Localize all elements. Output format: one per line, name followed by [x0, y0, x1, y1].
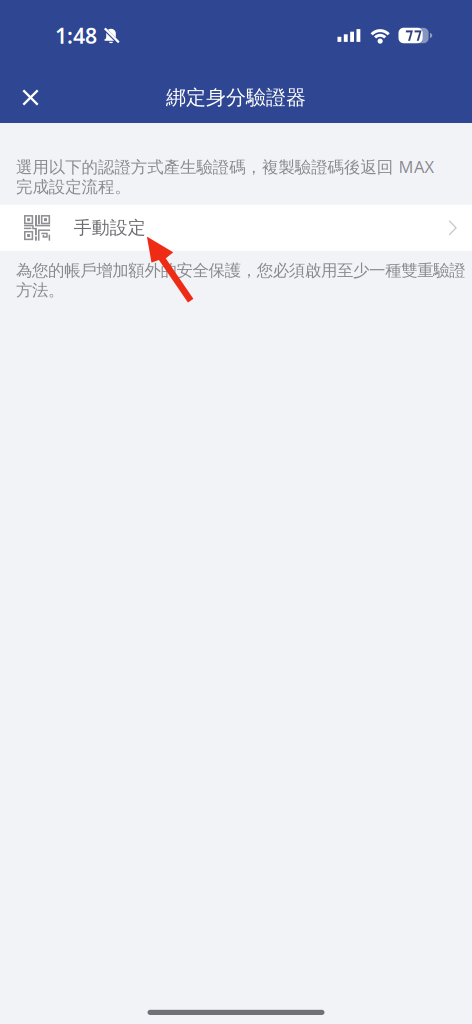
button[interactable]: 手動設定 [0, 205, 472, 251]
button[interactable]: Close [11, 78, 49, 116]
staticText: 手動設定 [74, 217, 146, 239]
staticText: 選用以下的認證方式產生驗證碼，複製驗證碼後返回 MAX 完成設定流程。 [16, 156, 434, 197]
staticText: 綁定身分驗證器 [166, 85, 306, 110]
staticText: 為您的帳戶增加額外的安全保護，您必須啟用至少一種雙重驗證 方法。 [16, 261, 465, 300]
staticText: 1:48 [55, 21, 97, 50]
